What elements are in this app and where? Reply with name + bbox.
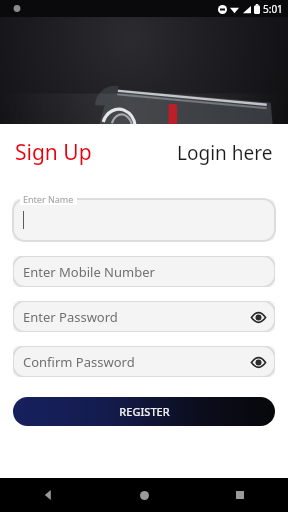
staticText: Enter Password: [23, 308, 118, 326]
staticText: Enter Name: [23, 193, 74, 205]
button[interactable]: Back: [33, 480, 63, 510]
button[interactable]: Enter Mobile Number: [13, 256, 275, 287]
button[interactable]: Home: [129, 480, 159, 510]
button[interactable]: Login here: [177, 140, 273, 166]
button[interactable]: Enter Password: [13, 301, 275, 332]
button[interactable]: REGISTER: [13, 397, 275, 426]
button[interactable]: Show password: [247, 351, 269, 373]
button[interactable]: Confirm Password: [13, 346, 275, 377]
button[interactable]: Recent apps: [225, 480, 255, 510]
staticText: 5:01: [263, 2, 283, 16]
button[interactable]: Sign Up: [15, 138, 92, 167]
button[interactable]: Enter Name: [13, 193, 275, 241]
button[interactable]: Show password: [247, 306, 269, 328]
staticText: Login here: [177, 140, 273, 166]
staticText: REGISTER: [119, 404, 170, 419]
staticText: Enter Mobile Number: [23, 263, 155, 281]
staticText: Confirm Password: [23, 353, 135, 371]
staticText: Sign Up: [15, 138, 92, 167]
